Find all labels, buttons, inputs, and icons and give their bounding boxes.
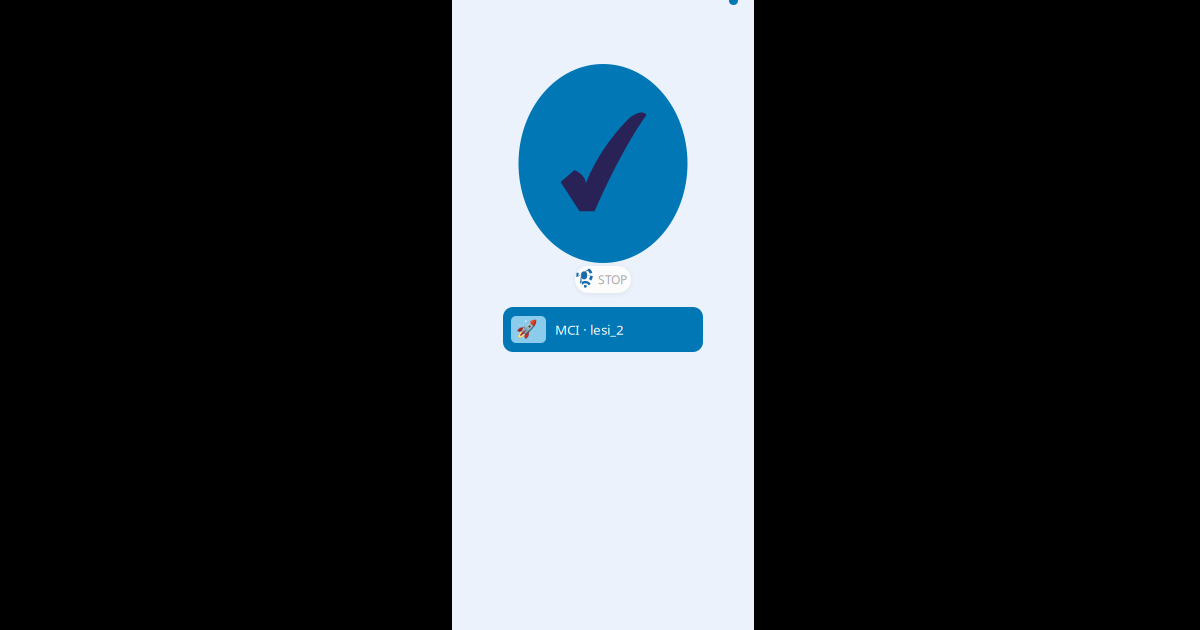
button[interactable]: STOP (575, 266, 631, 293)
staticText: MCI · lesi_2 (555, 321, 624, 338)
button[interactable]: 🚀 (503, 307, 703, 352)
button[interactable]: Status (729, 0, 738, 9)
staticText: 🚀 (515, 320, 537, 339)
staticText: STOP (598, 271, 627, 287)
